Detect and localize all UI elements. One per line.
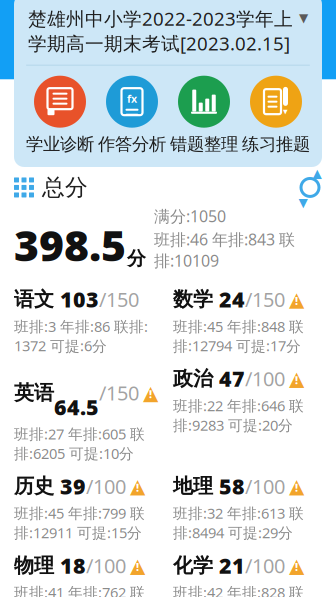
staticText: /100 — [86, 552, 126, 579]
staticText: /100 — [245, 473, 285, 499]
staticText: ▲ — [130, 475, 145, 497]
staticText: 地理 — [173, 474, 213, 498]
button[interactable]: fx — [96, 76, 168, 155]
staticText: ▼ — [299, 11, 308, 25]
staticText: ▴ — [312, 162, 321, 183]
button[interactable]: 错题整理 — [168, 76, 240, 155]
staticText: 21 — [213, 551, 245, 580]
button[interactable]: 楚雄州中小学2022-2023学年上学期高一期末考试[2023.02.15] — [14, 0, 322, 65]
staticText: 39 — [54, 472, 86, 500]
button[interactable]: 化学 — [173, 551, 322, 597]
staticText: ! — [295, 294, 298, 308]
staticText: ! — [295, 560, 298, 574]
staticText: 24 — [213, 285, 245, 313]
staticText: 班排:45 年排:799 联排:12911 可提:15分 — [14, 503, 145, 542]
staticText: 语文 — [14, 287, 54, 312]
staticText: ▲ — [130, 554, 145, 577]
staticText: 学业诊断 — [26, 134, 94, 155]
staticText: 398.5 — [14, 216, 126, 273]
staticText: 班排:3 年排:86 联排:1372 可提:6分 — [14, 316, 148, 355]
staticText: ! — [295, 481, 298, 495]
button[interactable]: ▾ — [240, 76, 312, 155]
staticText: ▾ — [298, 191, 307, 213]
staticText: 英语 — [14, 380, 54, 405]
button[interactable]: 英语 — [14, 364, 163, 463]
button[interactable]: 政治 — [173, 364, 322, 435]
staticText: 历史 — [14, 474, 54, 498]
staticText: 化学 — [173, 553, 213, 578]
staticText: 满分:1050 — [154, 205, 226, 227]
staticText: 错题整理 — [170, 134, 238, 155]
staticText: ▲ — [289, 367, 304, 390]
button[interactable]: 历史 — [14, 472, 163, 542]
button[interactable]: 学业诊断 — [24, 76, 96, 155]
staticText: /100 — [86, 473, 126, 499]
staticText: /100 — [245, 552, 285, 579]
staticText: 47 — [213, 364, 245, 393]
staticText: 58 — [213, 472, 245, 500]
staticText: ▲ — [289, 288, 304, 311]
staticText: 班排:22 年排:646 联排:9283 可提:20分 — [173, 396, 304, 435]
staticText: ! — [295, 373, 298, 387]
staticText: ▾ — [283, 106, 288, 116]
staticText: 作答分析 — [98, 134, 166, 155]
staticText: /150 — [99, 379, 139, 406]
staticText: 政治 — [173, 366, 213, 391]
button[interactable]: 物理 — [14, 551, 163, 597]
staticText: 班排:32 年排:613 联排:8494 可提:29分 — [173, 503, 304, 542]
staticText: ! — [136, 481, 139, 495]
button[interactable]: 语文 — [14, 285, 163, 355]
staticText: 班排:45 年排:848 联排:12794 可提:17分 — [173, 316, 304, 355]
button[interactable]: 地理 — [173, 472, 322, 542]
staticText: /150 — [99, 286, 139, 313]
staticText: 64.5 — [54, 364, 99, 421]
staticText: /100 — [245, 365, 285, 392]
staticText: 总分 — [42, 173, 88, 201]
button[interactable]: 数学 — [173, 285, 322, 355]
staticText: 物理 — [14, 553, 54, 578]
staticText: 班排:27 年排:605 联排:6205 可提:10分 — [14, 424, 145, 463]
staticText: 103 — [54, 285, 99, 313]
staticText: 楚雄州中小学2022-2023学年上学期高一期末考试[2023.02.15] — [28, 6, 293, 56]
staticText: ▲ — [289, 475, 304, 497]
staticText: 数学 — [173, 287, 213, 312]
staticText: 分 — [127, 247, 146, 270]
staticText: ▲ — [143, 381, 158, 404]
staticText: 班排:42 年排:828 联排:13375 可提:11分 — [173, 583, 304, 597]
staticText: fx — [127, 92, 137, 106]
button[interactable]: Refresh — [298, 175, 322, 199]
staticText: 班排:41 年排:762 联排:11847 可提:9分 — [14, 583, 145, 597]
staticText: /150 — [245, 286, 285, 313]
staticText: 练习推题 — [242, 134, 310, 155]
staticText: ! — [149, 387, 152, 401]
staticText: 18 — [54, 551, 86, 580]
staticText: ! — [136, 560, 139, 574]
staticText: 班排:46 年排:843 联排:10109 — [154, 229, 295, 271]
staticText: ▲ — [289, 554, 304, 577]
